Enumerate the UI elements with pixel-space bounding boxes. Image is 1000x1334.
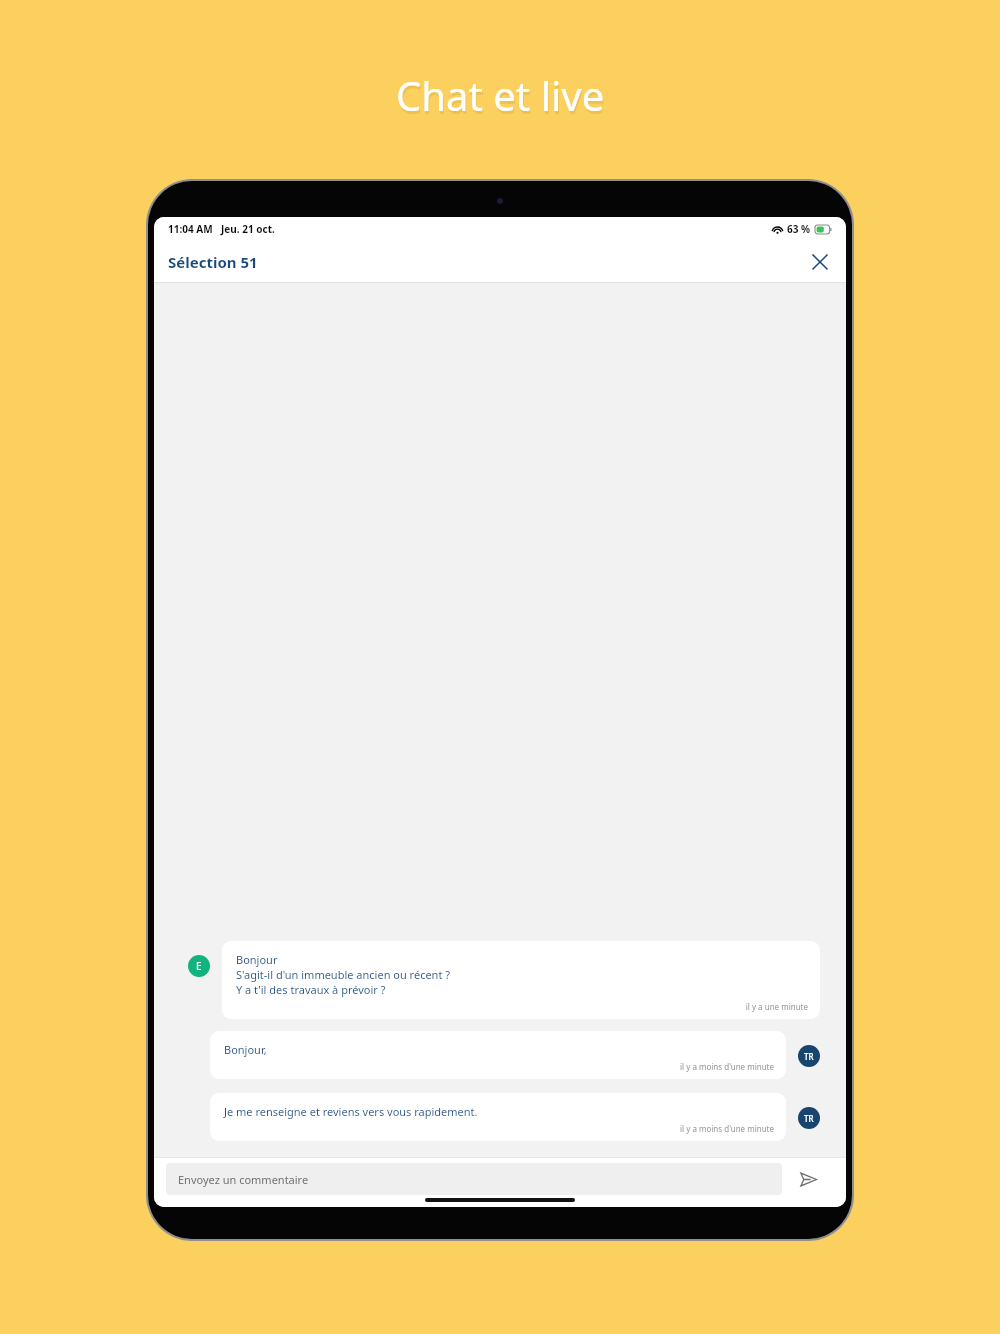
staticText: Envoyez un commentaire — [178, 1172, 309, 1187]
staticText: Je me renseigne et reviens vers vous rap… — [224, 1104, 478, 1119]
button[interactable]: E — [188, 941, 820, 1019]
staticText: Sélection 51 — [168, 252, 258, 272]
staticText: il y a une minute — [236, 1001, 808, 1012]
button[interactable]: Bonjour, — [210, 1031, 820, 1079]
staticText: 11:04 AM — [168, 222, 213, 236]
staticText: E — [196, 959, 202, 973]
staticText: Bonjour, — [224, 1042, 267, 1057]
button[interactable]: Envoyez un commentaire — [166, 1163, 782, 1195]
staticText: Y a t'il des travaux à prévoir ? — [236, 982, 386, 997]
button[interactable]: Je me renseigne et reviens vers vous rap… — [210, 1093, 820, 1141]
button[interactable]: Envoyer — [782, 1163, 834, 1195]
staticText: il y a moins d'une minute — [224, 1123, 774, 1134]
staticText: TR — [804, 1113, 814, 1124]
staticText: Bonjour — [236, 952, 278, 967]
staticText: il y a moins d'une minute — [224, 1061, 774, 1072]
staticText: TR — [804, 1051, 814, 1062]
staticText: 63 % — [787, 222, 811, 236]
staticText: S'agit-il d'un immeuble ancien ou récent… — [236, 967, 451, 982]
button[interactable]: Fermer — [804, 246, 836, 278]
staticText: Jeu. 21 oct. — [221, 222, 275, 236]
staticText: Chat et live — [397, 71, 606, 125]
staticText: Chat et live — [396, 68, 605, 122]
